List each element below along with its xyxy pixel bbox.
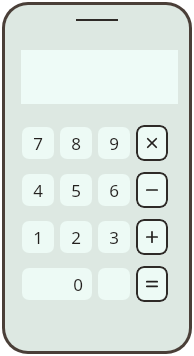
staticText: 5 [71, 179, 81, 202]
staticText: 0 [73, 273, 83, 296]
button[interactable]: Add [136, 219, 168, 255]
staticText: 1 [33, 226, 43, 249]
button[interactable]: Multiply [136, 125, 168, 161]
button[interactable]: 4 [22, 174, 54, 206]
button[interactable]: 5 [60, 174, 92, 206]
button[interactable]: Subtract [136, 172, 168, 208]
button[interactable]: 6 [98, 174, 130, 206]
button[interactable]: 1 [22, 221, 54, 253]
button[interactable]: Equals [136, 266, 168, 302]
staticText: 4 [33, 179, 43, 202]
button[interactable]: 8 [60, 127, 92, 159]
staticText: 8 [71, 132, 81, 155]
button[interactable]: 9 [98, 127, 130, 159]
staticText: 3 [109, 226, 119, 249]
staticText: 6 [109, 179, 119, 202]
staticText: 9 [109, 132, 119, 155]
staticText: 2 [71, 226, 81, 249]
button[interactable]: 3 [98, 221, 130, 253]
button[interactable]: 2 [60, 221, 92, 253]
button[interactable]: 0 [22, 268, 92, 300]
staticText: 7 [33, 132, 43, 155]
button[interactable] [98, 268, 130, 300]
button[interactable]: 7 [22, 127, 54, 159]
